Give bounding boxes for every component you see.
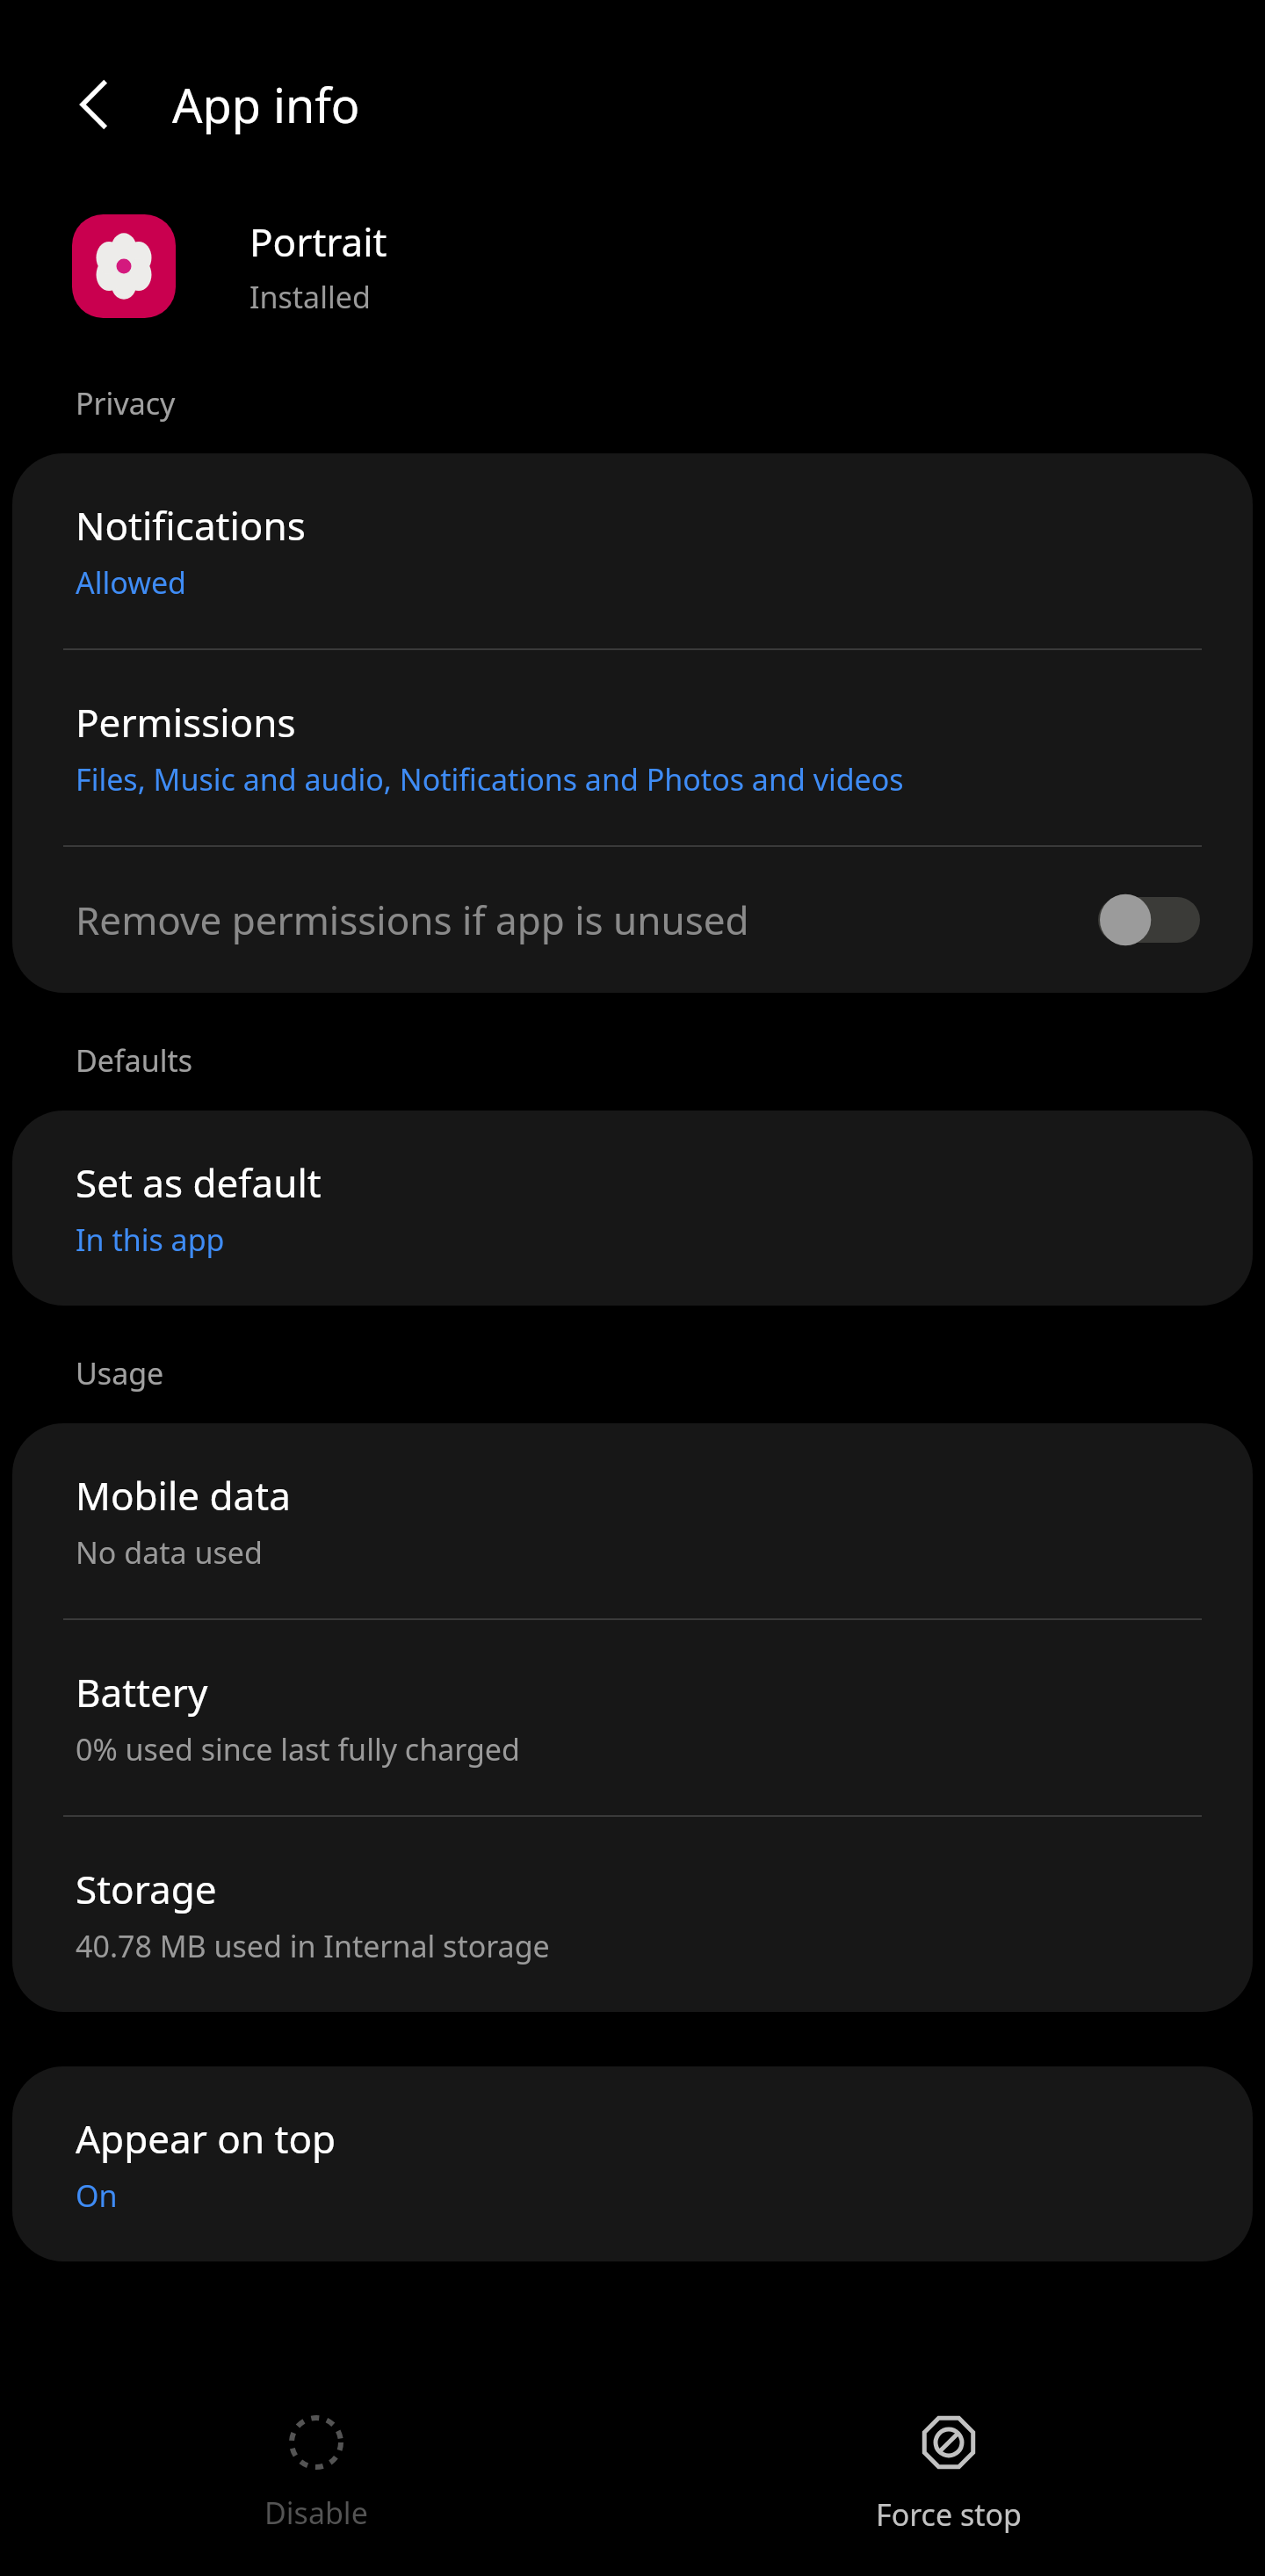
staticText: Files, Music and audio, Notifications an…: [76, 759, 904, 800]
staticText: Installed: [249, 277, 371, 317]
button[interactable]: Permissions: [12, 650, 1253, 845]
button[interactable]: Storage: [12, 1817, 1253, 2012]
staticText: Privacy: [76, 383, 176, 423]
button[interactable]: Remove permissions if app is unused: [12, 847, 1253, 993]
button[interactable]: Appear on top: [12, 2066, 1253, 2261]
staticText: In this app: [76, 1219, 225, 1260]
staticText: Battery: [76, 1666, 208, 1719]
staticText: Appear on top: [76, 2112, 336, 2165]
staticText: App info: [172, 72, 360, 137]
staticText: Defaults: [76, 1040, 193, 1081]
button[interactable]: Force stop: [632, 2372, 1265, 2576]
button[interactable]: Back: [46, 55, 144, 154]
staticText: Notifications: [76, 499, 306, 552]
staticText: Allowed: [76, 562, 186, 603]
staticText: Set as default: [76, 1156, 322, 1209]
button[interactable]: Remove permissions toggle: [1098, 893, 1200, 947]
button[interactable]: Battery: [12, 1620, 1253, 1815]
button[interactable]: Mobile data: [12, 1423, 1253, 1618]
button[interactable]: Disable: [0, 2372, 632, 2576]
staticText: 0% used since last fully charged: [76, 1729, 520, 1769]
staticText: On: [76, 2175, 118, 2216]
staticText: Disable: [264, 2493, 368, 2533]
staticText: Mobile data: [76, 1469, 291, 1522]
button[interactable]: Notifications: [12, 453, 1253, 648]
button[interactable]: Set as default: [12, 1111, 1253, 1306]
staticText: Permissions: [76, 696, 296, 749]
staticText: Force stop: [876, 2494, 1022, 2535]
staticText: Usage: [76, 1353, 164, 1393]
staticText: Remove permissions if app is unused: [76, 894, 1077, 946]
staticText: 40.78 MB used in Internal storage: [76, 1926, 550, 1966]
staticText: No data used: [76, 1532, 263, 1573]
staticText: Portrait: [249, 215, 387, 268]
staticText: Storage: [76, 1863, 217, 1915]
